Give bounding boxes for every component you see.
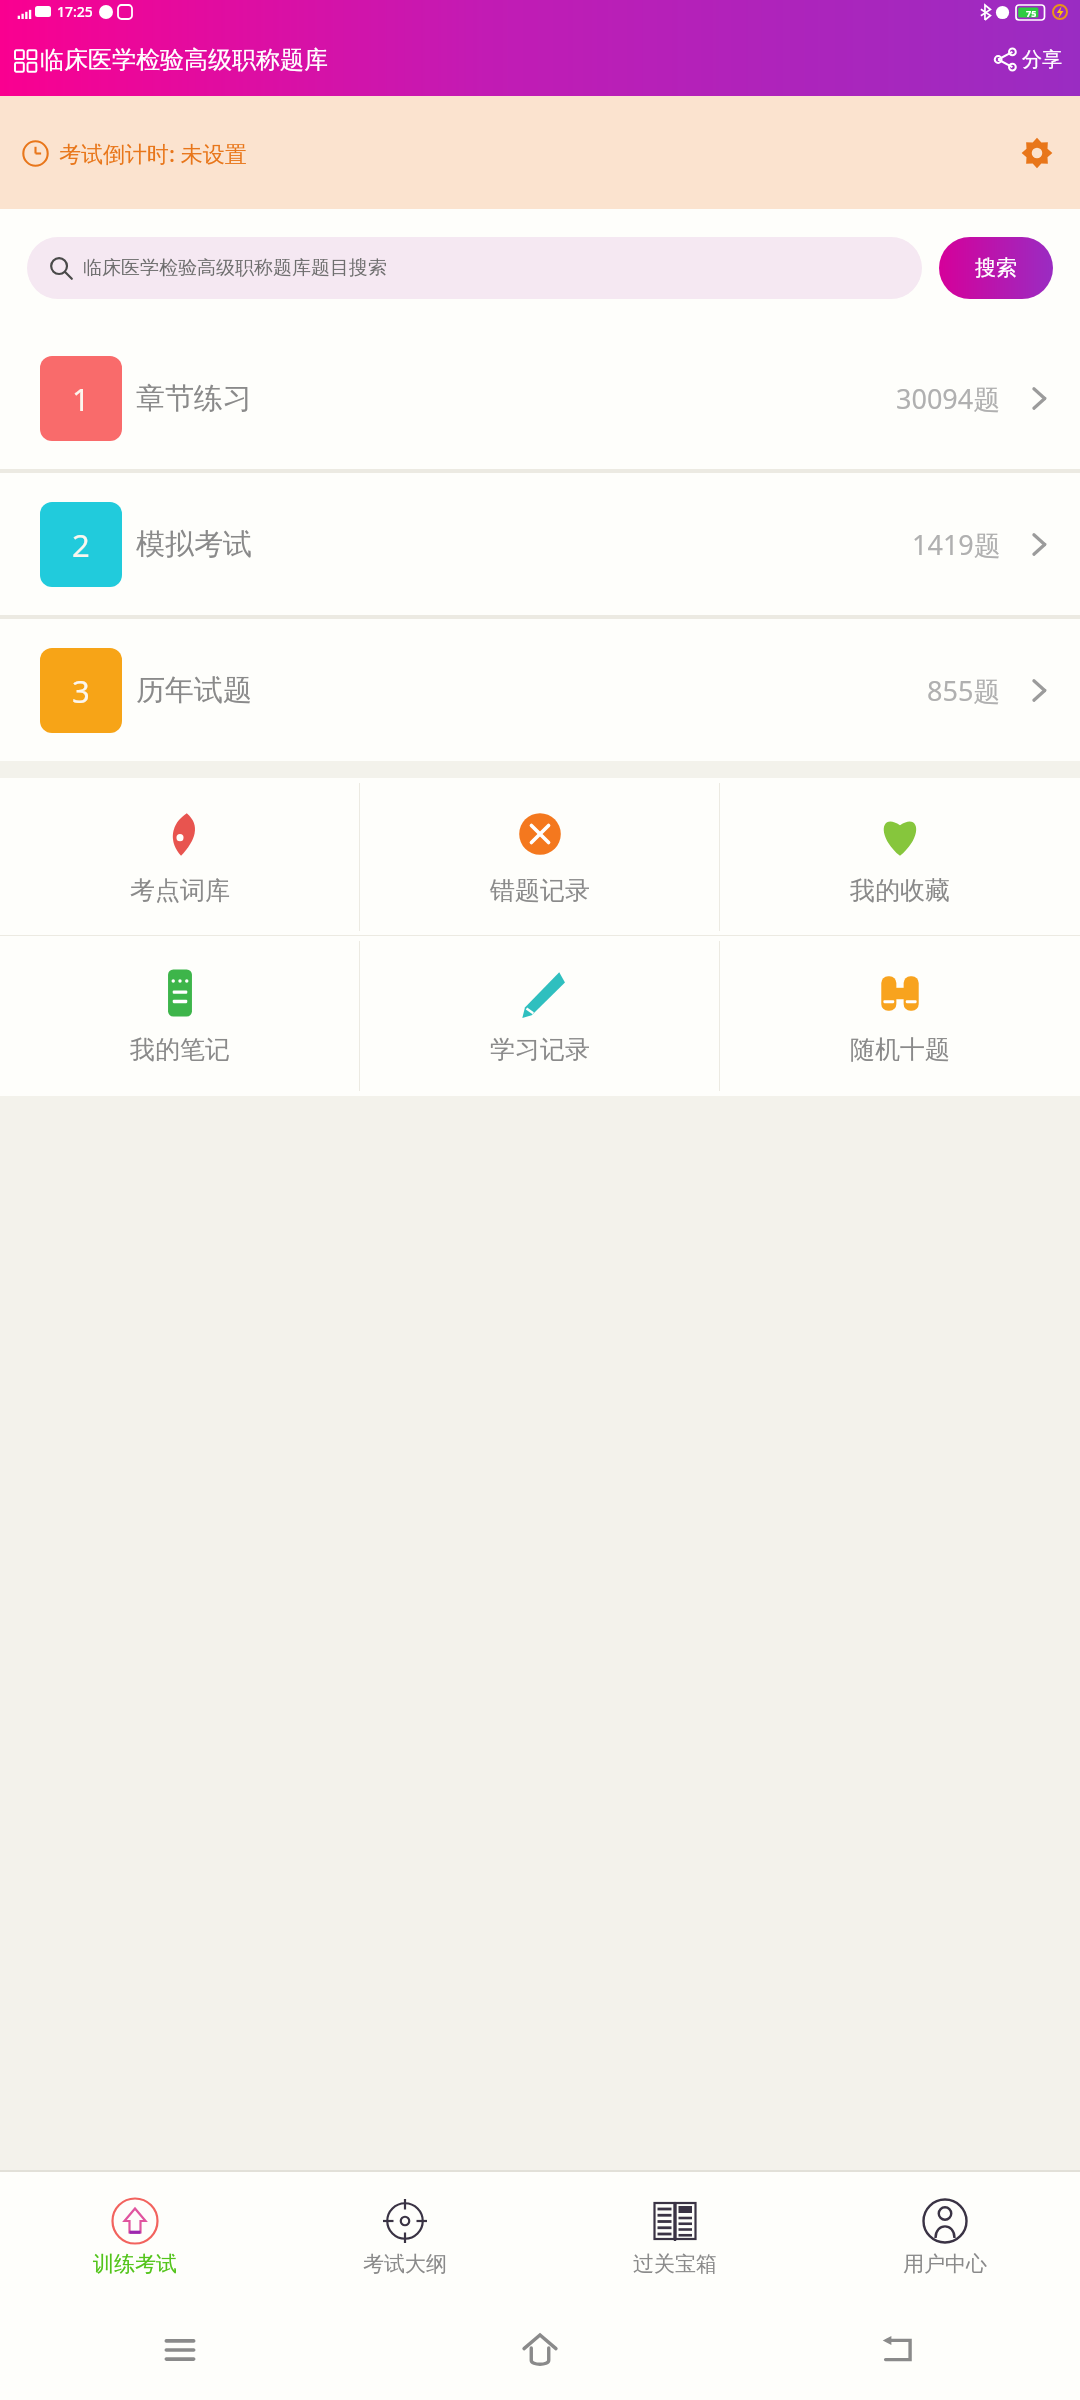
staticText: 用户中心 <box>903 2251 987 2277</box>
button[interactable]: 错题记录 <box>360 778 720 935</box>
staticText: 学习记录 <box>490 1034 590 1065</box>
button[interactable]: 1 <box>0 327 1080 469</box>
staticText: 考试大纲 <box>363 2251 447 2277</box>
staticText: 错题记录 <box>490 875 590 906</box>
button[interactable]: Back <box>720 2300 1080 2400</box>
staticText: 1419题 <box>912 526 1001 563</box>
staticText: 过关宝箱 <box>633 2251 717 2277</box>
staticText: 考点词库 <box>130 875 230 906</box>
button[interactable]: 3 <box>0 619 1080 761</box>
button[interactable]: 过关宝箱 <box>540 2172 810 2300</box>
button[interactable]: 搜索 <box>939 237 1053 299</box>
button[interactable]: 我的笔记 <box>0 936 360 1096</box>
staticText: 历年试题 <box>136 672 252 709</box>
button[interactable]: 我的收藏 <box>720 778 1080 935</box>
button[interactable]: 用户中心 <box>810 2172 1080 2300</box>
staticText: 章节练习 <box>136 380 252 417</box>
button[interactable]: 考试倒计时: 未设置 <box>0 96 1080 209</box>
staticText: 855题 <box>927 672 1001 709</box>
button[interactable]: 考点词库 <box>0 778 360 935</box>
button[interactable]: 训练考试 <box>0 2172 270 2300</box>
button[interactable]: 2 <box>0 473 1080 615</box>
staticText: 临床医学检验高级职称题库题目搜索 <box>83 256 387 280</box>
button[interactable]: Home <box>360 2300 720 2400</box>
button[interactable]: 考试大纲 <box>270 2172 540 2300</box>
staticText: 模拟考试 <box>136 526 252 563</box>
staticText: 30094题 <box>896 380 1001 417</box>
button[interactable]: 设置 <box>1014 130 1060 176</box>
staticText: 搜索 <box>975 255 1017 281</box>
button[interactable]: 分享 <box>990 37 1066 82</box>
button[interactable]: 临床医学检验高级职称题库题目搜索 <box>27 237 922 299</box>
button[interactable]: Recents <box>0 2300 360 2400</box>
staticText: 1 <box>72 378 90 420</box>
staticText: 75 <box>1026 7 1037 19</box>
staticText: 考试倒计时: 未设置 <box>59 138 247 168</box>
staticText: 分享 <box>1022 47 1062 72</box>
staticText: 我的收藏 <box>850 875 950 906</box>
staticText: 2 <box>72 524 90 566</box>
staticText: 3 <box>72 670 90 712</box>
staticText: 随机十题 <box>850 1034 950 1065</box>
staticText: 临床医学检验高级职称题库 <box>40 45 328 75</box>
button[interactable]: 学习记录 <box>360 936 720 1096</box>
staticText: 训练考试 <box>93 2251 177 2277</box>
staticText: 我的笔记 <box>130 1034 230 1065</box>
button[interactable]: 随机十题 <box>720 936 1080 1096</box>
staticText: 17:25 <box>57 2 93 21</box>
